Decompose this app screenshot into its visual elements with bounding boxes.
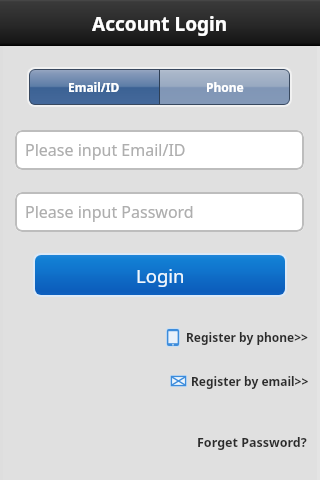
staticText: Account Login (92, 11, 228, 37)
staticText: Email/ID (68, 79, 120, 95)
staticText: Register by email>> (191, 373, 309, 389)
button[interactable]: Register by phone (166, 327, 308, 347)
staticText: Please input Email/ID (25, 139, 186, 161)
button[interactable]: Please input Password (15, 192, 304, 232)
other: Register by email (170, 375, 187, 387)
staticText: Please input Password (25, 201, 194, 223)
other: Register by phone (166, 328, 180, 347)
button[interactable]: Register by email (170, 372, 309, 390)
staticText: Register by phone>> (186, 329, 308, 345)
button[interactable]: Forget Password? (197, 434, 307, 451)
button[interactable]: Please input Email/ID (15, 130, 304, 170)
button[interactable]: Phone (160, 69, 290, 105)
button[interactable]: Email/ID (29, 69, 159, 105)
staticText: Forget Password? (197, 434, 307, 451)
staticText: Phone (206, 79, 244, 95)
staticText: Login (136, 263, 185, 288)
button[interactable]: Login (35, 255, 285, 295)
